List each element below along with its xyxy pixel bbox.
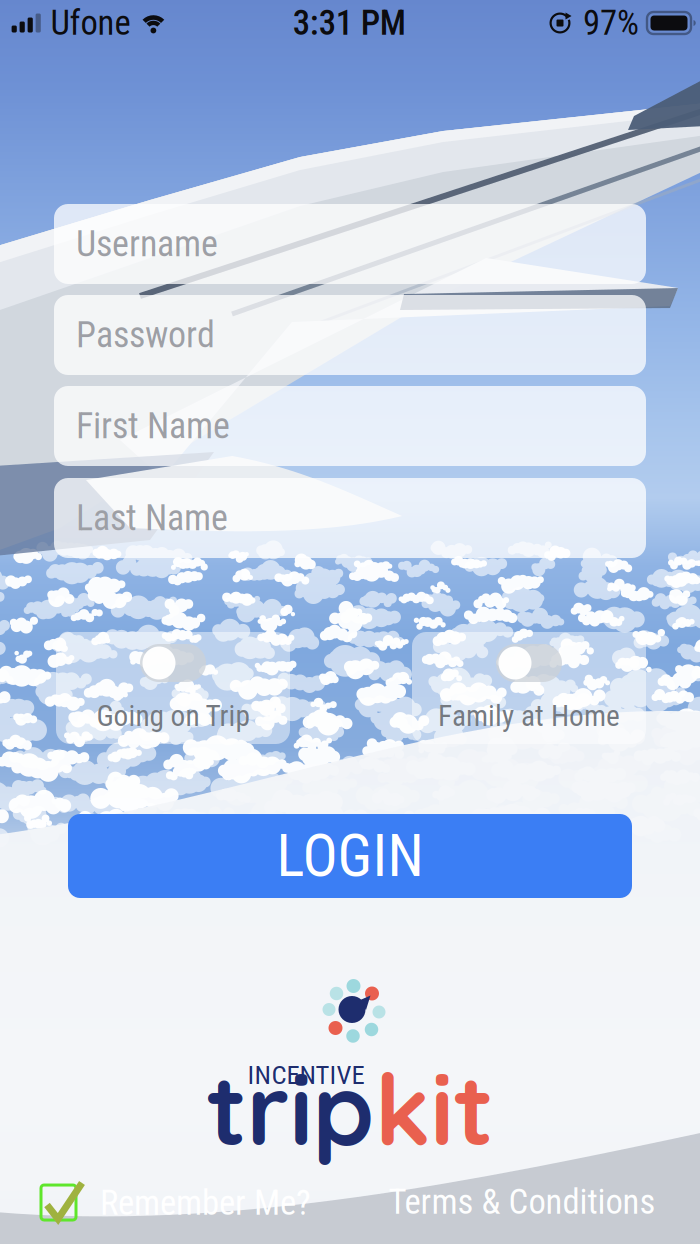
button[interactable]: Last Name <box>54 478 646 558</box>
staticText: trip <box>206 1046 374 1170</box>
button[interactable]: Going on Trip <box>56 632 290 744</box>
staticText: 97% <box>583 3 639 43</box>
staticText: Family at Home <box>438 699 620 733</box>
button[interactable]: Username <box>54 204 646 284</box>
button[interactable]: Terms & Conditions <box>382 1178 662 1226</box>
button[interactable]: First Name <box>54 386 646 466</box>
button[interactable]: Remember Me? <box>42 1179 332 1227</box>
button[interactable]: Password <box>54 295 646 375</box>
staticText: First Name <box>76 405 230 447</box>
staticText: Last Name <box>76 497 228 539</box>
staticText: Password <box>76 314 215 356</box>
staticText: INCENTIVE <box>247 1059 364 1091</box>
staticText: Remember Me? <box>100 1183 311 1223</box>
staticText: Going on Trip <box>96 699 249 733</box>
staticText: LOGIN <box>276 822 423 890</box>
staticText: Terms & Conditions <box>388 1182 655 1222</box>
staticText: Ufone <box>50 3 130 43</box>
button[interactable]: Family at Home <box>412 632 646 744</box>
staticText: 3:31 PM <box>293 3 406 43</box>
button[interactable]: LOGIN <box>68 814 632 898</box>
staticText: kit <box>374 1046 493 1170</box>
staticText: Username <box>76 223 218 265</box>
